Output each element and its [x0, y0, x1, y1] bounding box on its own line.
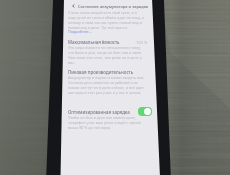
staticText: Это мера ёмкости по отношению к тому, чт… [68, 45, 145, 65]
button[interactable]: Back [63, 2, 153, 10]
button[interactable]: Back [70, 3, 76, 9]
staticText: У всех таких вещей есть свой срок, и в х… [68, 10, 145, 30]
staticText: Чтобы он был в деле как можно доле, смар… [68, 115, 145, 130]
button[interactable]: Подробнее... [68, 29, 92, 34]
staticText: Состояние аккумулятора и зарядка [78, 4, 149, 9]
staticText: Аккумулятор в норме и может выдать пик. … [68, 75, 145, 95]
staticText: Пиковая производительность [68, 69, 134, 75]
staticText: Оптимизированная зарядка [68, 109, 130, 115]
staticText: 100 % [136, 40, 148, 45]
staticText: Максимальная ёмкость [68, 39, 120, 45]
button[interactable]: Оптимизированная зарядка [68, 107, 152, 116]
